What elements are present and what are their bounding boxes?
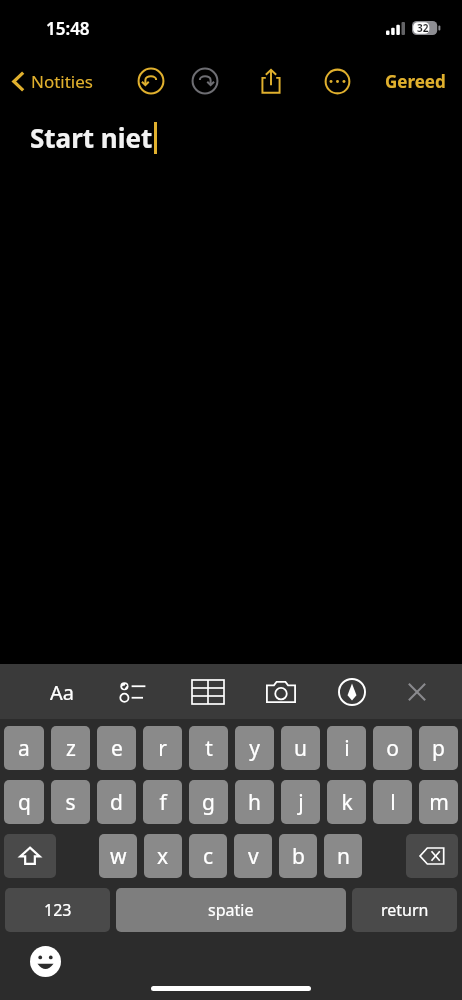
staticText: c: [203, 842, 214, 871]
button[interactable]: f: [143, 780, 182, 824]
staticText: Notities: [31, 70, 93, 93]
staticText: p: [432, 734, 445, 763]
staticText: Aa: [50, 679, 74, 706]
staticText: a: [18, 734, 30, 763]
staticText: o: [386, 734, 399, 763]
button[interactable]: a: [4, 726, 44, 770]
staticText: b: [292, 842, 305, 871]
staticText: m: [429, 788, 449, 817]
staticText: h: [248, 788, 261, 817]
button[interactable]: u: [281, 726, 320, 770]
button[interactable]: More options: [318, 62, 356, 100]
staticText: k: [341, 788, 353, 817]
button[interactable]: Checklist: [110, 668, 158, 716]
button[interactable]: m: [419, 780, 458, 824]
button[interactable]: Markup: [328, 668, 376, 716]
staticText: 123: [44, 899, 72, 921]
button[interactable]: 123: [5, 888, 110, 932]
button[interactable]: k: [327, 780, 366, 824]
staticText: t: [205, 734, 213, 763]
staticText: u: [294, 734, 307, 763]
button[interactable]: d: [97, 780, 136, 824]
button[interactable]: y: [235, 726, 274, 770]
staticText: e: [111, 734, 123, 763]
button[interactable]: o: [373, 726, 412, 770]
button[interactable]: Shift: [4, 834, 56, 878]
button[interactable]: i: [327, 726, 366, 770]
button[interactable]: h: [235, 780, 274, 824]
staticText: d: [110, 788, 123, 817]
staticText: Start niet: [30, 120, 153, 155]
staticText: w: [110, 842, 127, 871]
button[interactable]: Table: [184, 668, 232, 716]
button[interactable]: e: [97, 726, 136, 770]
button[interactable]: Undo: [133, 63, 169, 99]
staticText: j: [298, 788, 304, 817]
staticText: 32: [417, 21, 429, 35]
staticText: return: [381, 899, 429, 921]
button[interactable]: Camera: [257, 668, 305, 716]
button[interactable]: return: [352, 888, 457, 932]
staticText: f: [159, 788, 167, 817]
staticText: r: [158, 734, 167, 763]
button[interactable]: l: [373, 780, 412, 824]
staticText: v: [248, 842, 259, 871]
button[interactable]: x: [144, 834, 182, 878]
staticText: z: [66, 734, 76, 763]
button[interactable]: b: [279, 834, 317, 878]
staticText: Gereed: [385, 70, 446, 93]
button[interactable]: w: [99, 834, 137, 878]
staticText: s: [65, 788, 76, 817]
staticText: y: [249, 734, 260, 763]
button[interactable]: Backspace: [406, 834, 458, 878]
staticText: i: [344, 734, 350, 763]
button[interactable]: v: [234, 834, 272, 878]
button[interactable]: Gereed: [381, 64, 450, 99]
staticText: l: [390, 788, 396, 817]
button[interactable]: Notities: [10, 64, 95, 99]
button[interactable]: Share: [252, 62, 290, 100]
button[interactable]: g: [189, 780, 228, 824]
staticText: q: [18, 788, 31, 817]
staticText: g: [202, 788, 215, 817]
staticText: spatie: [208, 899, 254, 921]
button[interactable]: j: [281, 780, 320, 824]
button[interactable]: Redo: [187, 63, 223, 99]
staticText: 15:48: [46, 17, 90, 40]
staticText: n: [337, 842, 350, 871]
button[interactable]: z: [51, 726, 90, 770]
button[interactable]: s: [51, 780, 90, 824]
button[interactable]: spatie: [116, 888, 346, 932]
button[interactable]: n: [324, 834, 362, 878]
button[interactable]: c: [189, 834, 227, 878]
button[interactable]: t: [189, 726, 228, 770]
button[interactable]: p: [419, 726, 458, 770]
button[interactable]: Close keyboard: [393, 668, 441, 716]
button[interactable]: Text format: [38, 668, 86, 716]
button[interactable]: q: [4, 780, 44, 824]
button[interactable]: Emoji: [24, 940, 66, 982]
button[interactable]: r: [143, 726, 182, 770]
staticText: x: [157, 842, 169, 871]
